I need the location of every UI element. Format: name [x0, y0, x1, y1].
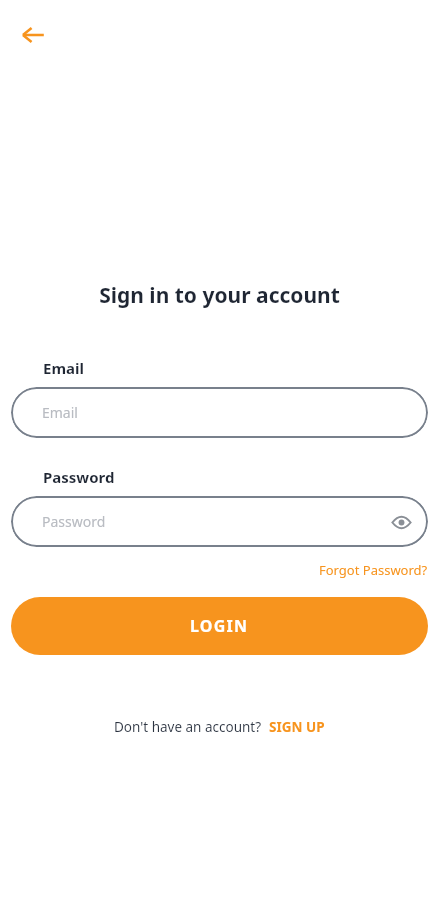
staticText: Email — [43, 358, 84, 378]
staticText: SIGN UP — [269, 718, 325, 736]
button[interactable]: Back — [12, 14, 54, 56]
staticText: Don't have an account? — [114, 718, 262, 736]
button[interactable]: Show password — [384, 505, 418, 539]
button[interactable]: SIGN UP — [269, 718, 325, 736]
staticText: Sign in to your account — [0, 281, 439, 310]
staticText: Password — [43, 467, 115, 487]
staticText: Email — [42, 403, 78, 422]
staticText: Password — [42, 512, 106, 531]
button[interactable]: Forgot Password? — [319, 561, 428, 579]
button[interactable]: LOGIN — [11, 597, 428, 655]
button[interactable]: Password — [11, 496, 428, 547]
staticText: Forgot Password? — [319, 561, 428, 579]
staticText: LOGIN — [190, 615, 249, 637]
button[interactable]: Email — [11, 387, 428, 438]
